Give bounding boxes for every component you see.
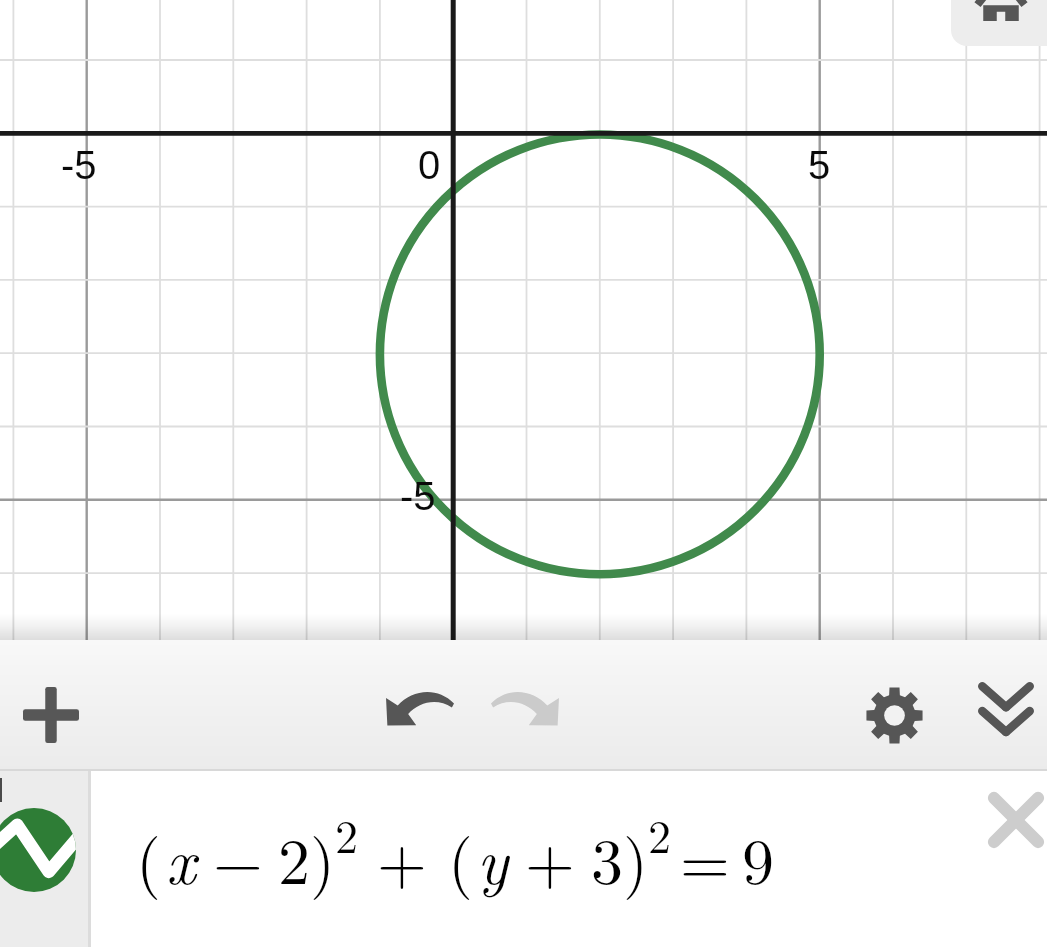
button[interactable]: Undo (370, 670, 468, 744)
button[interactable]: Collapse expression list (959, 660, 1047, 754)
staticText: y (477, 812, 509, 903)
staticText: + (525, 812, 575, 903)
staticText: -5 (400, 474, 436, 519)
staticText: 3) (591, 812, 648, 903)
staticText: 0 (418, 143, 441, 188)
button[interactable]: Redo (477, 670, 575, 744)
staticText: 2 (648, 801, 671, 866)
button[interactable]: Home (951, 0, 1047, 46)
staticText: ( (448, 812, 473, 903)
staticText: 5 (808, 143, 831, 188)
staticText: 9 (742, 812, 774, 903)
staticText: 2) (278, 812, 335, 903)
button[interactable]: Toggle graph visibility (0, 771, 88, 947)
staticText: = (680, 812, 730, 903)
button[interactable]: Settings (847, 668, 941, 762)
staticText: 2 (335, 801, 358, 866)
button[interactable]: Delete expression (925, 771, 1047, 947)
button[interactable]: Add expression (4, 668, 98, 762)
staticText: x (166, 812, 196, 903)
staticText: − (213, 812, 263, 903)
staticText: + (377, 812, 427, 903)
button[interactable]: ( (91, 771, 925, 947)
staticText: ( (136, 812, 161, 903)
staticText: -5 (61, 143, 97, 188)
